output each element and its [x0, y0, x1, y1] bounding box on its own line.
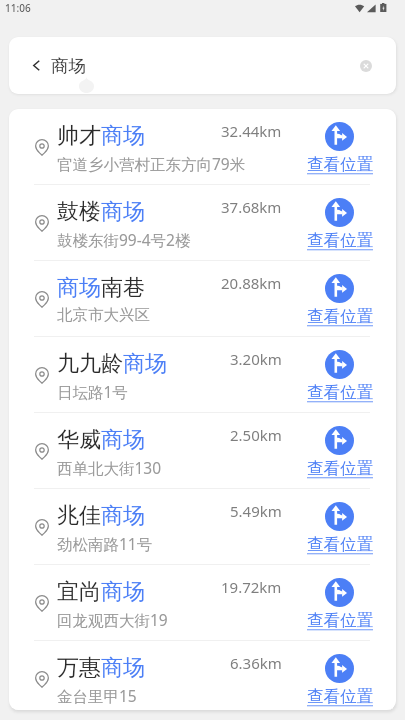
staticText: 劲松南路11号	[57, 533, 153, 554]
staticText: 商场	[51, 55, 86, 77]
staticText: 查看位置	[307, 306, 373, 327]
staticText: 鼓楼东街99-4号2楼	[57, 229, 191, 250]
staticText: 2.50km	[230, 425, 282, 445]
staticText: 查看位置	[307, 610, 373, 631]
staticText: 查看位置	[307, 230, 373, 251]
staticText: 万惠商场	[57, 654, 145, 682]
staticText: 华威商场	[57, 426, 145, 454]
staticText: 回龙观西大街19	[57, 609, 168, 630]
staticText: 金台里甲15	[57, 685, 137, 706]
staticText: 37.68km	[221, 197, 282, 217]
button[interactable]: 九九龄商场	[9, 337, 396, 412]
button[interactable]: 宜尚商场	[9, 565, 396, 640]
staticText: 5.49km	[230, 501, 282, 521]
staticText: 6.36km	[230, 653, 282, 673]
staticText: 日坛路1号	[57, 381, 128, 402]
button[interactable]: 华威商场	[9, 413, 396, 488]
button[interactable]: 商场南巷	[9, 261, 396, 336]
staticText: 查看位置	[307, 382, 373, 403]
staticText: 查看位置	[307, 686, 373, 707]
button[interactable]: 查看位置	[297, 502, 382, 555]
button[interactable]: Back	[21, 50, 51, 80]
button[interactable]: 万惠商场	[9, 641, 396, 710]
staticText: 11:06	[5, 1, 31, 15]
staticText: 九九龄商场	[57, 350, 167, 378]
staticText: 兆佳商场	[57, 502, 145, 530]
button[interactable]: 查看位置	[297, 122, 382, 175]
staticText: 32.44km	[221, 121, 282, 141]
staticText: 19.72km	[221, 577, 282, 597]
staticText: 查看位置	[307, 154, 373, 175]
staticText: 20.88km	[221, 273, 282, 293]
staticText: 北京市大兴区	[57, 305, 150, 325]
button[interactable]: 兆佳商场	[9, 489, 396, 564]
button[interactable]: 帅才商场	[9, 109, 396, 184]
staticText: 查看位置	[307, 534, 373, 555]
staticText: 商场南巷	[57, 274, 145, 302]
button[interactable]: 查看位置	[297, 578, 382, 631]
staticText: 宜尚商场	[57, 578, 145, 606]
staticText: 查看位置	[307, 458, 373, 479]
button[interactable]: Clear	[356, 56, 376, 76]
button[interactable]: 查看位置	[297, 426, 382, 479]
button[interactable]: 查看位置	[297, 198, 382, 251]
button[interactable]: 查看位置	[297, 274, 382, 327]
button[interactable]: 查看位置	[297, 654, 382, 707]
staticText: 3.20km	[230, 349, 282, 369]
button[interactable]: 鼓楼商场	[9, 185, 396, 260]
staticText: 西单北大街130	[57, 457, 162, 478]
staticText: 帅才商场	[57, 122, 145, 150]
staticText: 鼓楼商场	[57, 198, 145, 226]
staticText: 官道乡小营村正东方向79米	[57, 153, 246, 174]
button[interactable]: 查看位置	[297, 350, 382, 403]
